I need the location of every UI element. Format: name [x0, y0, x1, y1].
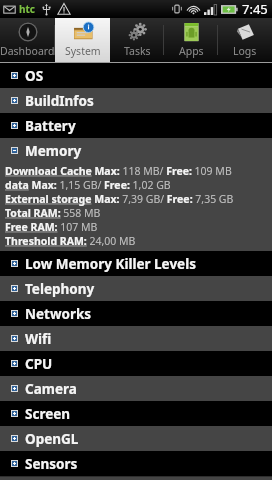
staticText: Camera: [25, 380, 77, 398]
staticText: Low Memory Killer Levels: [25, 255, 196, 273]
other: Collapse: [11, 147, 18, 154]
button[interactable]: Expand: [0, 326, 272, 351]
button[interactable]: Expand: [0, 276, 272, 301]
button[interactable]: Expand: [0, 113, 272, 138]
button[interactable]: Expand: [0, 88, 272, 113]
button[interactable]: Expand: [0, 376, 272, 401]
staticText: data Max: 1,15 GB/ Free: 1,02 GB: [5, 178, 171, 192]
staticText: OS: [25, 67, 44, 85]
staticText: OpenGL: [25, 430, 79, 448]
staticText: System: [65, 44, 101, 58]
other: Expand: [11, 460, 18, 467]
button[interactable]: Expand: [0, 63, 272, 88]
staticText: Networks: [25, 305, 92, 323]
other: Expand: [11, 385, 18, 392]
staticText: External storage Max: 7,39 GB/ Free: 7,3…: [5, 192, 234, 206]
staticText: BuildInfos: [25, 92, 94, 110]
other: Expand: [11, 360, 18, 367]
other: Expand: [11, 285, 18, 292]
other: Expand: [11, 435, 18, 442]
staticText: Memory: [25, 142, 82, 160]
staticText: Threshold RAM: 24,00 MB: [5, 234, 136, 248]
button[interactable]: Expand: [0, 301, 272, 326]
button[interactable]: Expand: [0, 251, 272, 276]
button[interactable]: Logs: [218, 18, 272, 62]
staticText: Screen: [25, 405, 71, 423]
button[interactable]: Download Cache Max: 118 MB/ Free: 109 MB: [0, 163, 272, 251]
button[interactable]: Expand: [0, 351, 272, 376]
button[interactable]: Expand: [0, 451, 272, 476]
other: Expand: [11, 97, 18, 104]
button[interactable]: System: [55, 18, 110, 62]
button[interactable]: Dashboard: [0, 18, 55, 62]
button[interactable]: Expand: [0, 401, 272, 426]
staticText: Sensors: [25, 455, 78, 473]
staticText: CPU: [25, 355, 53, 373]
staticText: Logs: [233, 44, 257, 58]
staticText: Battery: [25, 117, 76, 135]
other: Expand: [11, 410, 18, 417]
staticText: Free RAM: 107 MB: [5, 220, 98, 234]
staticText: Wifi: [25, 330, 52, 348]
other: Expand: [11, 260, 18, 267]
staticText: Apps: [179, 44, 204, 58]
staticText: htc: [19, 2, 35, 16]
other: Expand: [11, 122, 18, 129]
staticText: Total RAM: 558 MB: [5, 206, 101, 220]
staticText: 7:45: [242, 0, 268, 18]
button[interactable]: Tasks: [110, 18, 164, 62]
button[interactable]: Apps: [164, 18, 218, 62]
button[interactable]: Expand: [0, 426, 272, 451]
staticText: Download Cache Max: 118 MB/ Free: 109 MB: [5, 164, 232, 178]
button[interactable]: Collapse: [0, 138, 272, 163]
staticText: Dashboard: [0, 44, 55, 58]
staticText: Tasks: [124, 44, 151, 58]
other: Expand: [11, 72, 18, 79]
other: Expand: [11, 335, 18, 342]
staticText: Telephony: [25, 280, 95, 298]
other: Expand: [11, 310, 18, 317]
